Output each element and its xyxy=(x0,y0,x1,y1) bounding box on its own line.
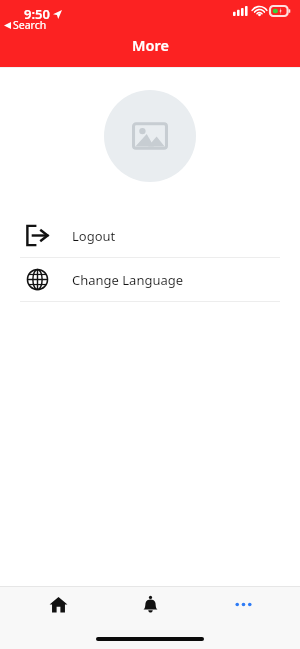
button[interactable]: Notifications xyxy=(115,587,185,621)
button[interactable]: Change Language xyxy=(0,258,300,301)
staticText: More xyxy=(132,35,169,55)
button[interactable] xyxy=(104,90,196,182)
staticText: Logout xyxy=(72,227,116,245)
button[interactable]: Logout xyxy=(0,214,300,257)
button[interactable]: Home xyxy=(23,587,93,621)
staticText: Search xyxy=(13,18,47,32)
staticText: 9:50 xyxy=(24,5,50,23)
button[interactable]: More xyxy=(208,587,278,621)
staticText: Change Language xyxy=(72,271,184,289)
